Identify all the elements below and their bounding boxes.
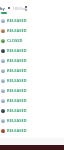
staticText: RELEASED <box>7 108 27 114</box>
staticText: RELEASED <box>7 128 27 134</box>
button[interactable]: More options <box>25 9 27 11</box>
button[interactable]: RELEASED <box>0 106 64 116</box>
button[interactable]: RELEASED <box>0 16 64 26</box>
staticText: RELEASED <box>7 78 27 84</box>
staticText: 100% Done <box>13 7 27 11</box>
staticText: RELEASED <box>7 88 27 94</box>
button[interactable]: RELEASED <box>0 26 64 36</box>
staticText: RELEASED <box>7 58 27 64</box>
button[interactable]: RELEASED <box>0 46 64 56</box>
button[interactable]: by <box>0 6 5 11</box>
button[interactable]: RELEASED <box>0 96 64 106</box>
staticText: RELEASED <box>7 98 27 104</box>
button[interactable]: RELEASED <box>0 126 64 136</box>
button[interactable]: RELEASED <box>0 116 64 126</box>
staticText: RELEASED <box>7 18 27 24</box>
button[interactable]: CLOSED <box>0 36 64 46</box>
staticText: CLOSED <box>7 38 23 44</box>
staticText: RELEASED <box>7 28 27 34</box>
button[interactable]: RELEASED <box>0 66 64 76</box>
staticText: RELEASED <box>7 118 27 124</box>
staticText: RELEASED <box>7 68 27 74</box>
staticText: RELEASED <box>7 48 27 54</box>
button[interactable]: RELEASED <box>0 76 64 86</box>
button[interactable]: RELEASED <box>0 86 64 96</box>
button[interactable]: RELEASED <box>0 56 64 66</box>
